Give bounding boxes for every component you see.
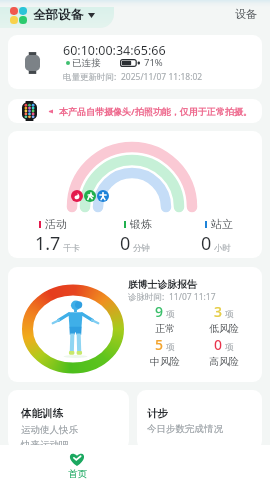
staticText: 今日步数完成情况 <box>147 423 223 435</box>
button[interactable]: 朕博士诊脉报告 <box>8 267 262 382</box>
staticText: 5 <box>155 335 164 354</box>
staticText: 0 <box>214 335 223 354</box>
staticText: 锻炼 <box>130 217 152 231</box>
staticText: 3 <box>214 302 223 321</box>
staticText: 分钟 <box>133 243 150 254</box>
staticText: 60:10:00:34:65:66 <box>63 42 166 59</box>
button[interactable]: 体能训练 <box>8 390 129 450</box>
staticText: 诊脉时间: <box>128 291 165 303</box>
button[interactable]: 计步 <box>137 390 262 450</box>
button[interactable]: 首页 <box>57 452 97 480</box>
staticText: 站立 <box>211 217 233 231</box>
staticText: 9 <box>155 302 164 321</box>
staticText: 1.7 <box>35 231 61 256</box>
staticText: 体能训练 <box>21 407 63 420</box>
staticText: 运动使人快乐 <box>21 424 78 436</box>
staticText: 2025/11/07 11:18:02 <box>121 71 203 83</box>
staticText: 小时 <box>214 243 231 254</box>
staticText: 全部设备 <box>33 7 83 23</box>
staticText: 计步 <box>147 407 168 420</box>
staticText: 首页 <box>68 468 87 480</box>
button[interactable]: 60:10:00:34:65:66 <box>8 35 262 89</box>
staticText: 项 <box>225 309 234 320</box>
staticText: 项 <box>166 342 175 353</box>
staticText: 千卡 <box>63 243 80 254</box>
staticText: 11/07 11:17 <box>169 291 216 303</box>
staticText: 项 <box>225 342 234 353</box>
staticText: 中风险 <box>150 355 180 368</box>
staticText: 设备 <box>235 7 257 21</box>
staticText: 0 <box>201 231 212 256</box>
button[interactable]: 本产品自带摄像头/拍照功能，仅用于正常拍摄。 <box>8 99 262 123</box>
staticText: 低风险 <box>209 322 239 335</box>
staticText: 正常 <box>155 322 175 335</box>
staticText: 电量更新时间: <box>63 71 117 83</box>
button[interactable]: 全部设备 <box>10 6 95 24</box>
staticText: 高风险 <box>209 355 239 368</box>
button[interactable]: 设备 <box>230 5 262 23</box>
staticText: 0 <box>120 231 131 256</box>
staticText: 朕博士诊脉报告 <box>128 279 197 291</box>
staticText: 活动 <box>45 217 67 231</box>
staticText: 本产品自带摄像头/拍照功能，仅用于正常拍摄。 <box>59 105 252 117</box>
staticText: 项 <box>166 309 175 320</box>
staticText: 71% <box>144 56 163 69</box>
button[interactable]: 活动 <box>8 131 262 258</box>
staticText: 已连接 <box>72 57 101 69</box>
staticText: 快来运动吧 <box>21 439 69 450</box>
